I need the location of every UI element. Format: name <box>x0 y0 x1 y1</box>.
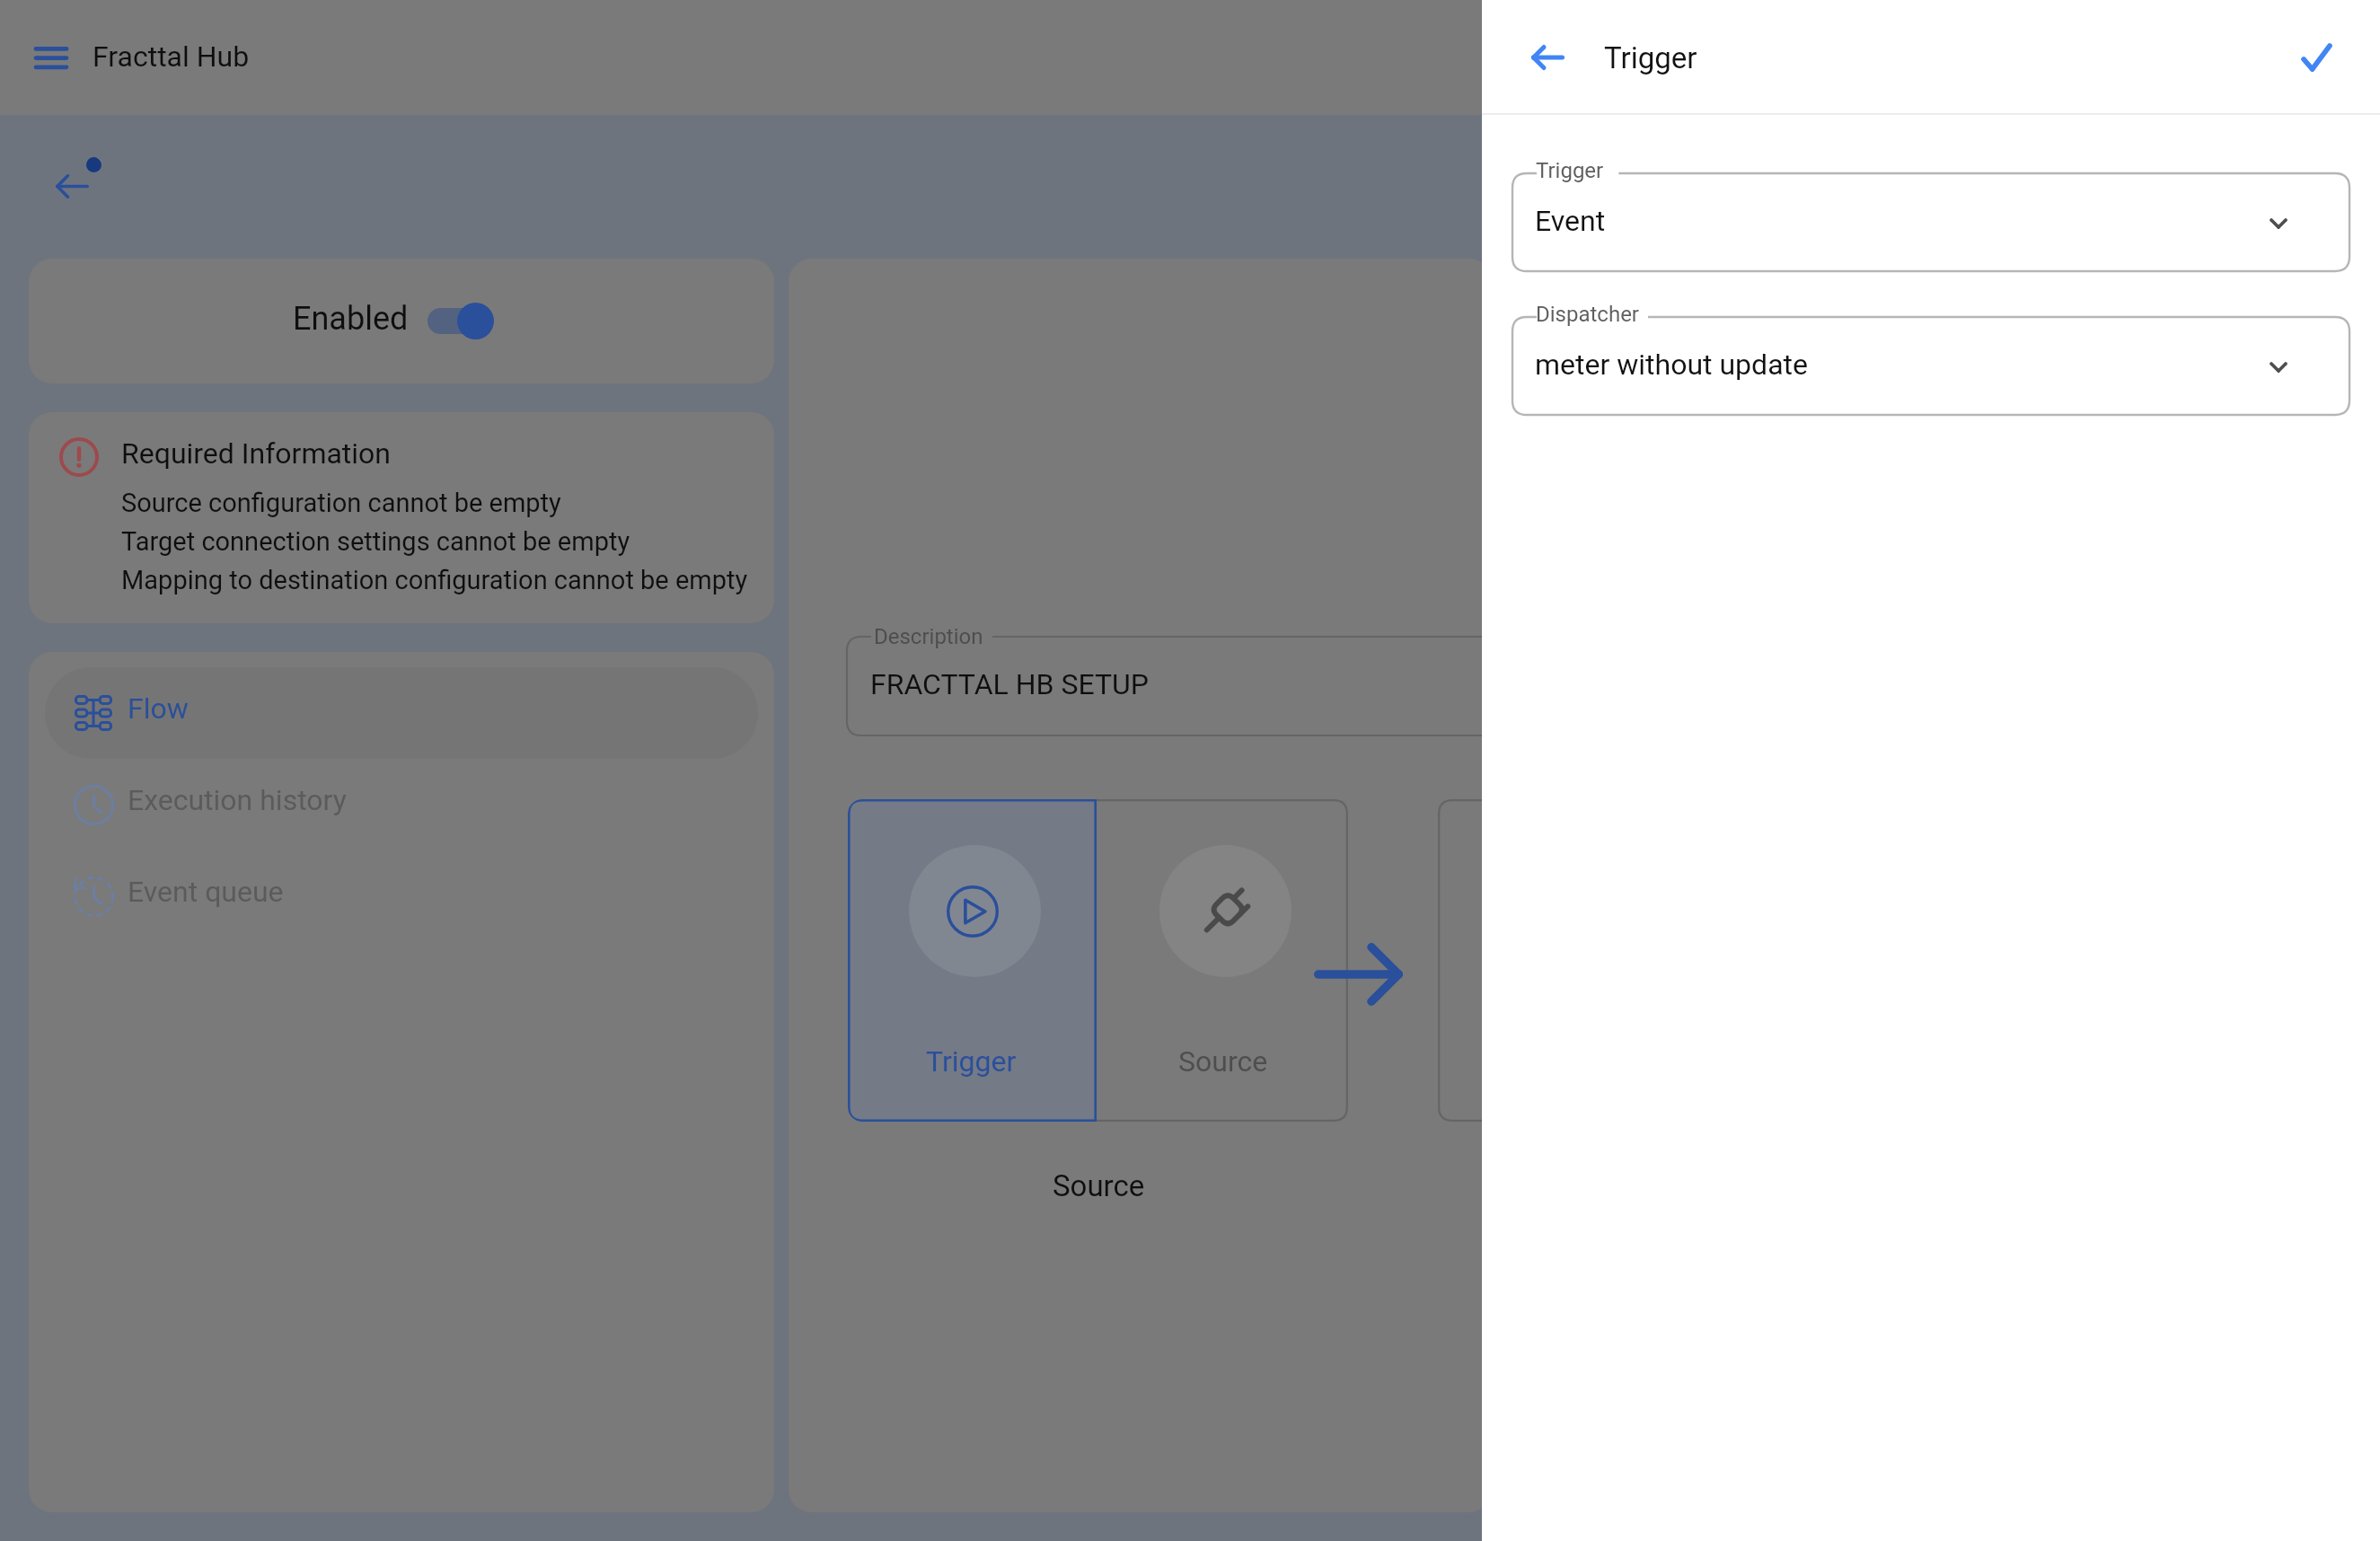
button[interactable]: Event queue <box>45 850 758 942</box>
button[interactable]: Open navigation menu <box>14 22 86 93</box>
button[interactable]: Trigger <box>848 799 1097 1122</box>
staticText: Source configuration cannot be empty <box>121 488 561 518</box>
staticText: Trigger <box>1604 40 1697 75</box>
staticText: Source <box>1178 1044 1268 1079</box>
staticText: Target connection settings cannot be emp… <box>121 526 630 557</box>
staticText: FRACTTAL HB SETUP <box>870 667 1149 701</box>
staticText: Enabled <box>293 300 409 338</box>
staticText: Flow <box>128 691 189 726</box>
button[interactable]: Execution history <box>45 759 758 850</box>
button[interactable]: Source <box>1097 799 1348 1122</box>
button[interactable]: Go back <box>38 149 110 221</box>
staticText: Dispatcher <box>1536 302 1639 327</box>
button[interactable]: Flow <box>45 667 758 759</box>
button[interactable]: Enabled <box>29 259 774 383</box>
staticText: Execution history <box>128 783 347 817</box>
staticText: Fracttal Hub <box>93 40 250 74</box>
button[interactable]: Back <box>1509 19 1586 96</box>
staticText: Event queue <box>128 875 284 909</box>
button[interactable]: Save <box>2278 19 2355 96</box>
staticText: Mapping to destination configuration can… <box>121 565 748 595</box>
staticText: Description <box>874 624 983 649</box>
staticText: Required Information <box>121 436 392 471</box>
button[interactable]: Dispatcher <box>1512 317 2349 415</box>
staticText: Source <box>1053 1168 1145 1203</box>
staticText: Trigger <box>1536 158 1604 183</box>
button[interactable]: Trigger <box>1512 173 2349 271</box>
staticText: Trigger <box>926 1044 1017 1079</box>
staticText: meter without update <box>1535 348 1808 382</box>
staticText: Event <box>1535 204 1606 238</box>
